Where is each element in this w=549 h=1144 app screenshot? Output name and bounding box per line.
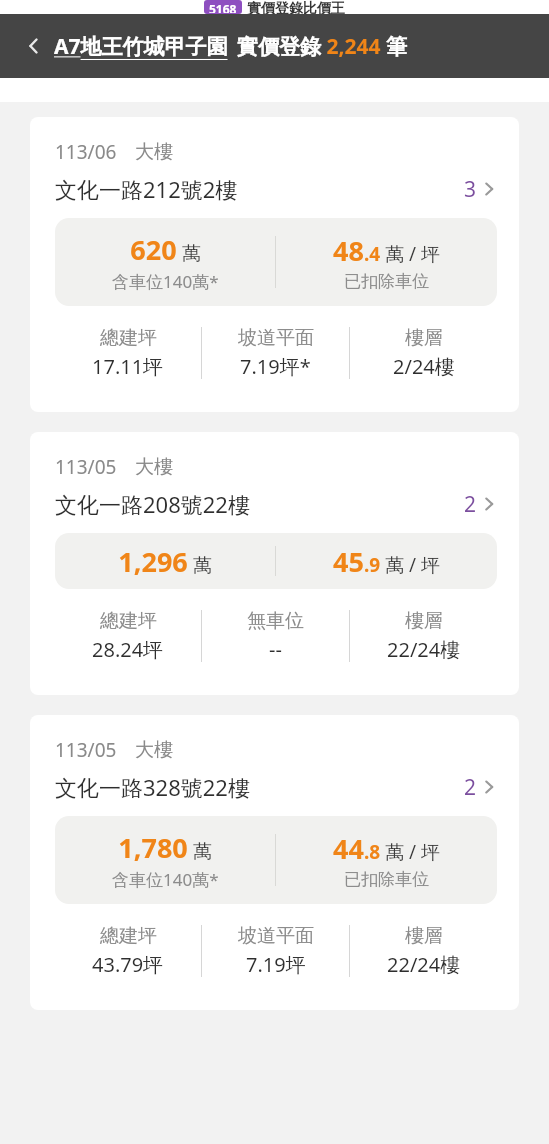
staticText: 45.9 萬 / 坪 — [333, 543, 440, 580]
staticText: 48.4 萬 / 坪 — [333, 232, 440, 269]
staticText: 22/24樓 — [387, 951, 461, 978]
staticText: 已扣除車位 — [344, 869, 429, 890]
staticText: 7.19坪* — [240, 353, 311, 380]
staticText: 大樓 — [135, 738, 173, 762]
button[interactable]: 113/05 — [30, 715, 519, 1010]
staticText: 22/24樓 — [387, 636, 461, 663]
staticText: 3 — [464, 175, 477, 204]
staticText: 大樓 — [135, 455, 173, 479]
staticText: 2/24樓 — [393, 353, 455, 380]
staticText: 總建坪 — [100, 924, 157, 948]
staticText: 含車位140萬* — [112, 868, 219, 891]
staticText: 樓層 — [405, 609, 443, 633]
staticText: 大樓 — [135, 140, 173, 164]
staticText: 113/05 — [55, 737, 117, 763]
staticText: 已扣除車位 — [344, 271, 429, 292]
staticText: 28.24坪 — [92, 636, 164, 663]
staticText: 實價登錄 2,244 筆 — [237, 32, 407, 61]
staticText: 文化一路328號22樓 — [55, 772, 250, 802]
staticText: 樓層 — [405, 326, 443, 350]
staticText: 總建坪 — [100, 609, 157, 633]
staticText: 2 — [464, 773, 477, 802]
staticText: 43.79坪 — [92, 951, 164, 978]
staticText: 7.19坪 — [246, 951, 306, 978]
staticText: 17.11坪 — [92, 353, 164, 380]
staticText: 坡道平面 — [238, 924, 314, 948]
staticText: 1,780 萬 — [118, 829, 212, 866]
staticText: 文化一路208號22樓 — [55, 489, 250, 519]
staticText: 1,296 萬 — [118, 543, 212, 580]
staticText: A7地王竹城甲子園 — [54, 32, 228, 61]
staticText: 44.8 萬 / 坪 — [333, 830, 440, 867]
staticText: 實價登錄比價王 — [247, 0, 345, 14]
button[interactable]: A7地王竹城甲子園 — [54, 32, 228, 61]
staticText: -- — [269, 636, 282, 663]
staticText: 620 萬 — [130, 231, 201, 268]
staticText: 2 — [464, 490, 477, 519]
staticText: 含車位140萬* — [112, 270, 219, 293]
button[interactable]: Back — [18, 30, 50, 62]
staticText: 總建坪 — [100, 326, 157, 350]
staticText: 5168 — [209, 1, 237, 13]
staticText: 樓層 — [405, 924, 443, 948]
staticText: 113/05 — [55, 454, 117, 480]
staticText: 無車位 — [247, 609, 304, 633]
staticText: 文化一路212號2樓 — [55, 174, 238, 204]
staticText: 113/06 — [55, 139, 117, 165]
button[interactable]: 113/06 — [30, 117, 519, 412]
staticText: 坡道平面 — [238, 326, 314, 350]
button[interactable]: 113/05 — [30, 432, 519, 695]
